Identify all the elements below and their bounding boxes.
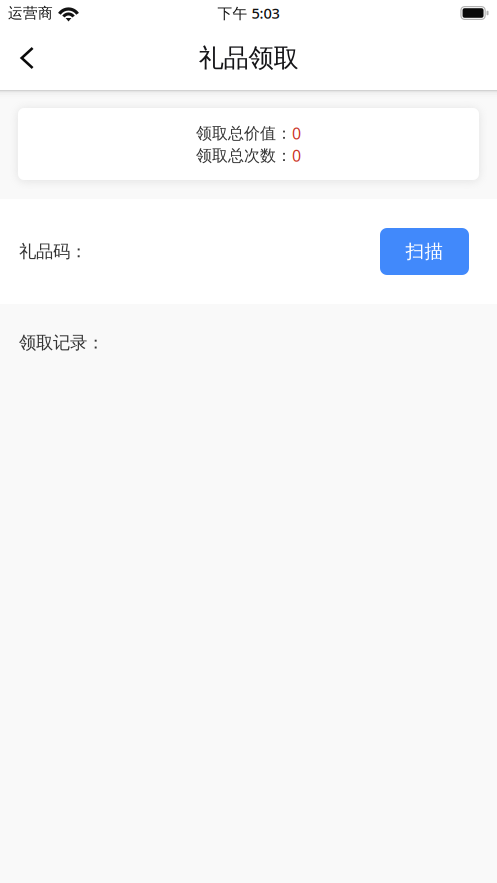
staticText: 下午 5:03 [217,3,279,23]
staticText: 0 [292,123,301,144]
staticText: 领取记录： [19,332,104,353]
staticText: 运营商 [8,4,53,22]
staticText: 领取总价值： [196,123,292,143]
button[interactable]: 扫描 [380,228,469,275]
staticText: 礼品码： [19,241,87,262]
staticText: 0 [292,145,301,166]
staticText: 领取总次数： [196,146,292,165]
button[interactable]: 返回 [5,34,49,82]
staticText: 礼品领取 [198,42,298,73]
staticText: 扫描 [405,240,443,263]
